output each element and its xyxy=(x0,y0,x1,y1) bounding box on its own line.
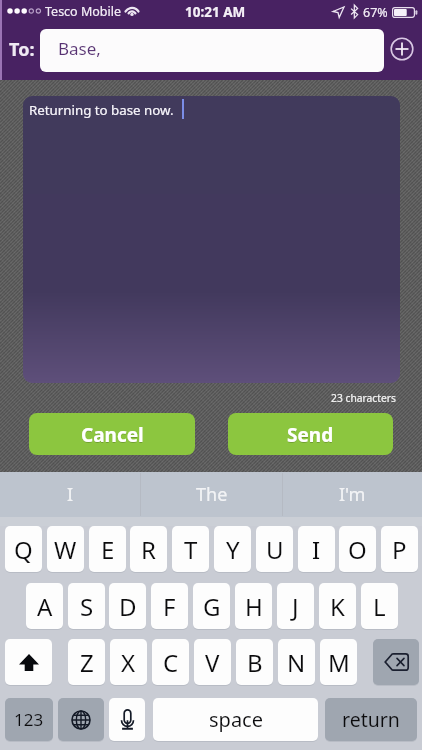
staticText: C xyxy=(163,646,179,679)
staticText: S xyxy=(80,590,94,623)
staticText: G xyxy=(203,590,221,623)
staticText: 10:21 AM xyxy=(185,3,246,21)
staticText: 123 xyxy=(14,708,44,731)
staticText: The xyxy=(196,482,228,507)
staticText: J xyxy=(292,590,299,623)
staticText: Tesco Mobile xyxy=(45,3,122,20)
button[interactable]: L xyxy=(361,583,398,629)
button[interactable]: N xyxy=(278,639,315,685)
button[interactable]: Z xyxy=(68,639,105,685)
staticText: Send xyxy=(287,423,334,449)
staticText: R xyxy=(141,533,156,566)
button[interactable]: I xyxy=(0,472,140,517)
button[interactable]: B xyxy=(236,639,273,685)
button[interactable]: X xyxy=(110,639,147,685)
button[interactable]: Send xyxy=(228,413,393,455)
button[interactable]: The xyxy=(141,472,282,517)
button[interactable]: C xyxy=(152,639,189,685)
button[interactable]: Shift xyxy=(5,639,52,685)
button[interactable]: J xyxy=(277,583,314,629)
button[interactable]: I'm xyxy=(283,472,422,517)
staticText: I'm xyxy=(339,482,366,507)
staticText: Cancel xyxy=(81,423,144,449)
button[interactable]: space xyxy=(153,698,318,741)
button[interactable]: T xyxy=(172,526,209,572)
button[interactable]: Y xyxy=(214,526,251,572)
staticText: Base, xyxy=(58,37,101,60)
button[interactable]: Returning to base now. xyxy=(23,96,400,383)
staticText: O xyxy=(348,533,367,566)
staticText: To: xyxy=(9,37,35,62)
button[interactable]: A xyxy=(26,583,63,629)
staticText: 67% xyxy=(363,4,388,21)
button[interactable]: W xyxy=(47,526,84,572)
button[interactable]: Change keyboard xyxy=(58,698,104,741)
button[interactable]: 123 xyxy=(5,698,53,741)
button[interactable]: U xyxy=(256,526,293,572)
button[interactable]: Backspace xyxy=(373,639,419,685)
staticText: U xyxy=(266,533,284,566)
button[interactable]: D xyxy=(109,583,146,629)
button[interactable]: return xyxy=(325,698,417,741)
other: Backspace xyxy=(384,653,409,671)
staticText: D xyxy=(119,590,137,623)
staticText: space xyxy=(209,706,263,733)
staticText: Q xyxy=(14,533,33,566)
button[interactable]: Dictate xyxy=(109,698,145,741)
staticText: X xyxy=(121,646,136,679)
button[interactable]: K xyxy=(319,583,356,629)
button[interactable]: V xyxy=(194,639,231,685)
button[interactable]: M xyxy=(320,639,357,685)
button[interactable]: Cancel xyxy=(29,413,195,455)
staticText: N xyxy=(287,646,306,679)
button[interactable]: Q xyxy=(5,526,42,572)
staticText: V xyxy=(205,646,220,679)
staticText: I xyxy=(312,533,321,566)
staticText: Y xyxy=(226,533,240,566)
button[interactable]: O xyxy=(339,526,376,572)
staticText: E xyxy=(101,533,115,566)
button[interactable]: H xyxy=(235,583,272,629)
button[interactable]: R xyxy=(130,526,167,572)
staticText: Returning to base now. xyxy=(29,101,174,119)
staticText: W xyxy=(54,533,77,566)
staticText: K xyxy=(330,590,345,623)
staticText: H xyxy=(245,590,263,623)
button[interactable]: I xyxy=(298,526,335,572)
staticText: return xyxy=(342,706,400,733)
other: Shift xyxy=(19,654,39,671)
staticText: P xyxy=(392,533,407,566)
staticText: Cancel xyxy=(81,422,144,448)
staticText: F xyxy=(163,590,176,623)
button[interactable]: G xyxy=(193,583,230,629)
button[interactable]: E xyxy=(89,526,126,572)
staticText: I xyxy=(67,482,74,507)
button[interactable]: Add contact xyxy=(390,37,414,61)
staticText: T xyxy=(184,533,198,566)
staticText: Z xyxy=(80,646,94,679)
staticText: M xyxy=(328,646,350,679)
button[interactable]: Base, xyxy=(40,29,384,72)
button[interactable]: F xyxy=(151,583,188,629)
staticText: Send xyxy=(287,422,334,448)
staticText: B xyxy=(247,646,263,679)
staticText: L xyxy=(373,590,386,623)
button[interactable]: P xyxy=(381,526,418,572)
button[interactable]: S xyxy=(68,583,105,629)
staticText: 23 characters xyxy=(331,391,397,405)
staticText: A xyxy=(37,590,53,623)
